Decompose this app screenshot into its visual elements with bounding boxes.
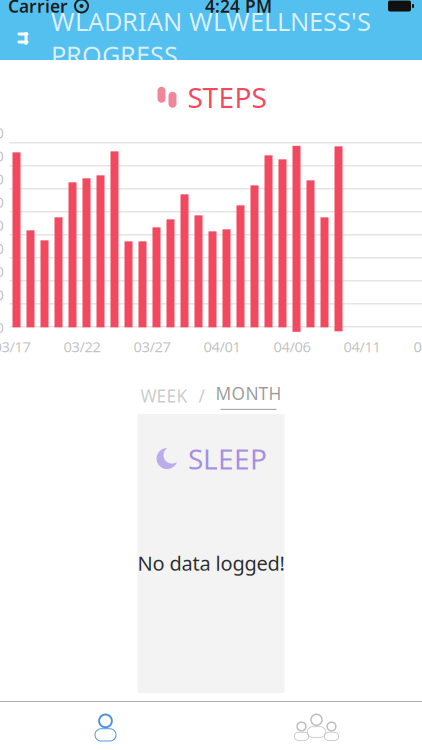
staticText: 6.0 K: [0, 169, 3, 208]
button[interactable]: My progress: [0, 702, 211, 750]
staticText: 8.0 K: [0, 123, 3, 162]
staticText: 5.0 K: [0, 192, 3, 231]
staticText: 0: [0, 318, 3, 337]
staticText: 7.0 K: [0, 146, 3, 185]
staticText: WLADRIAN WLWELLNESS'S PROGRESS: [51, 4, 371, 72]
staticText: 4.0 K: [0, 215, 3, 254]
staticText: 04/16: [413, 337, 422, 356]
staticText: 04/01: [203, 337, 240, 356]
button[interactable]: Friends: [211, 702, 422, 750]
staticText: 4:24 PM: [205, 0, 272, 17]
staticText: Carrier: [8, 0, 68, 17]
staticText: 03/22: [63, 337, 100, 356]
staticText: 03/17: [0, 337, 30, 356]
button[interactable]: WEEK: [137, 380, 190, 411]
staticText: 04/06: [273, 337, 310, 356]
staticText: 03/27: [133, 337, 170, 356]
staticText: No data logged!: [137, 550, 284, 576]
staticText: 1.0 K: [0, 285, 3, 324]
staticText: 04/11: [343, 337, 380, 356]
staticText: MONTH: [215, 382, 281, 405]
staticText: 2.0 K: [0, 262, 3, 301]
button[interactable]: Back: [6, 16, 46, 60]
staticText: SLEEP: [188, 440, 267, 477]
staticText: /: [198, 384, 204, 407]
staticText: 3.0 K: [0, 238, 3, 277]
staticText: STEPS: [187, 79, 266, 116]
button[interactable]: MONTH: [212, 382, 284, 410]
staticText: WEEK: [140, 384, 187, 407]
